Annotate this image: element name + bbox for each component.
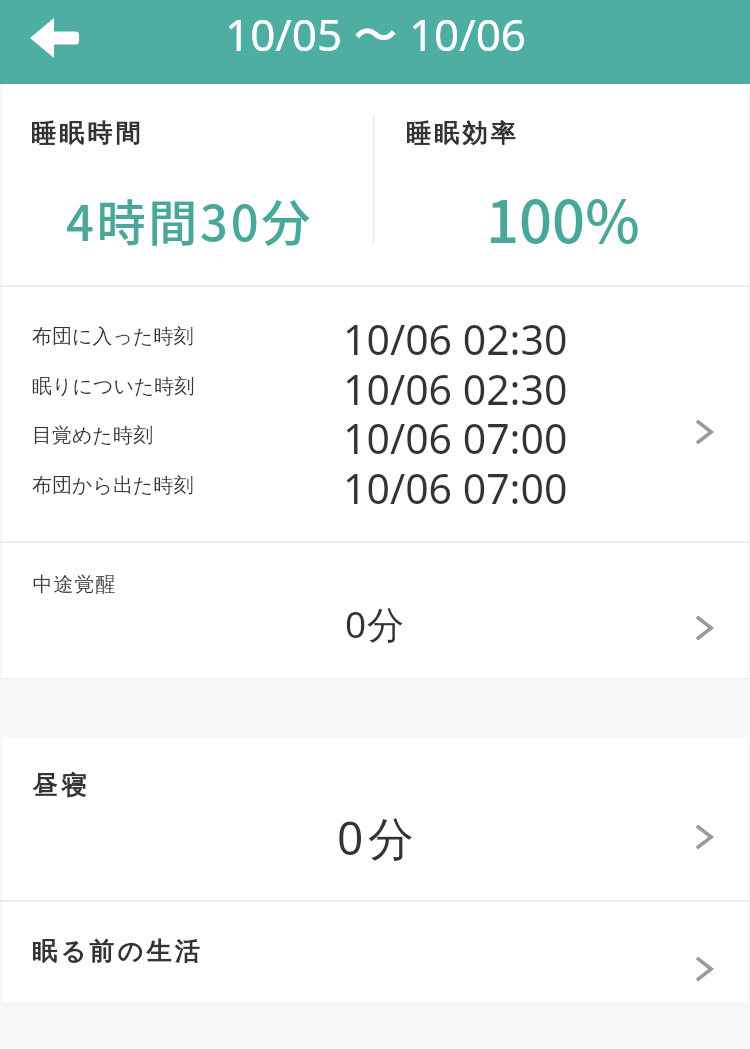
staticText: 10/06 07:00 — [343, 410, 568, 466]
staticText: 中途覚醒 — [32, 572, 116, 597]
button[interactable]: Back — [16, 7, 86, 77]
staticText: 目覚めた時刻 — [32, 423, 153, 448]
staticText: 10/06 02:30 — [343, 311, 568, 367]
button[interactable]: 布団に入った時刻 — [0, 287, 750, 541]
staticText: 4時間30分 — [66, 184, 313, 255]
staticText: 睡眠時間 — [29, 118, 142, 149]
staticText: 布団から出た時刻 — [32, 473, 194, 498]
staticText: 眠る前の生活 — [32, 936, 203, 967]
staticText: 睡眠効率 — [404, 118, 517, 149]
staticText: 眠りについた時刻 — [32, 374, 195, 399]
staticText: 0分 — [337, 806, 419, 869]
staticText: 100% — [486, 176, 640, 256]
staticText: 0分 — [345, 598, 405, 649]
staticText: 10/06 07:00 — [343, 460, 568, 516]
button[interactable]: 眠る前の生活 — [0, 902, 750, 1002]
staticText: 10/06 02:30 — [343, 361, 568, 417]
staticText: 布団に入った時刻 — [32, 324, 194, 349]
staticText: 昼寝 — [32, 770, 91, 801]
button[interactable]: 中途覚醒 — [0, 543, 750, 678]
staticText: 10/05 〜 10/06 — [225, 4, 526, 64]
button[interactable]: 昼寝 — [0, 737, 750, 900]
